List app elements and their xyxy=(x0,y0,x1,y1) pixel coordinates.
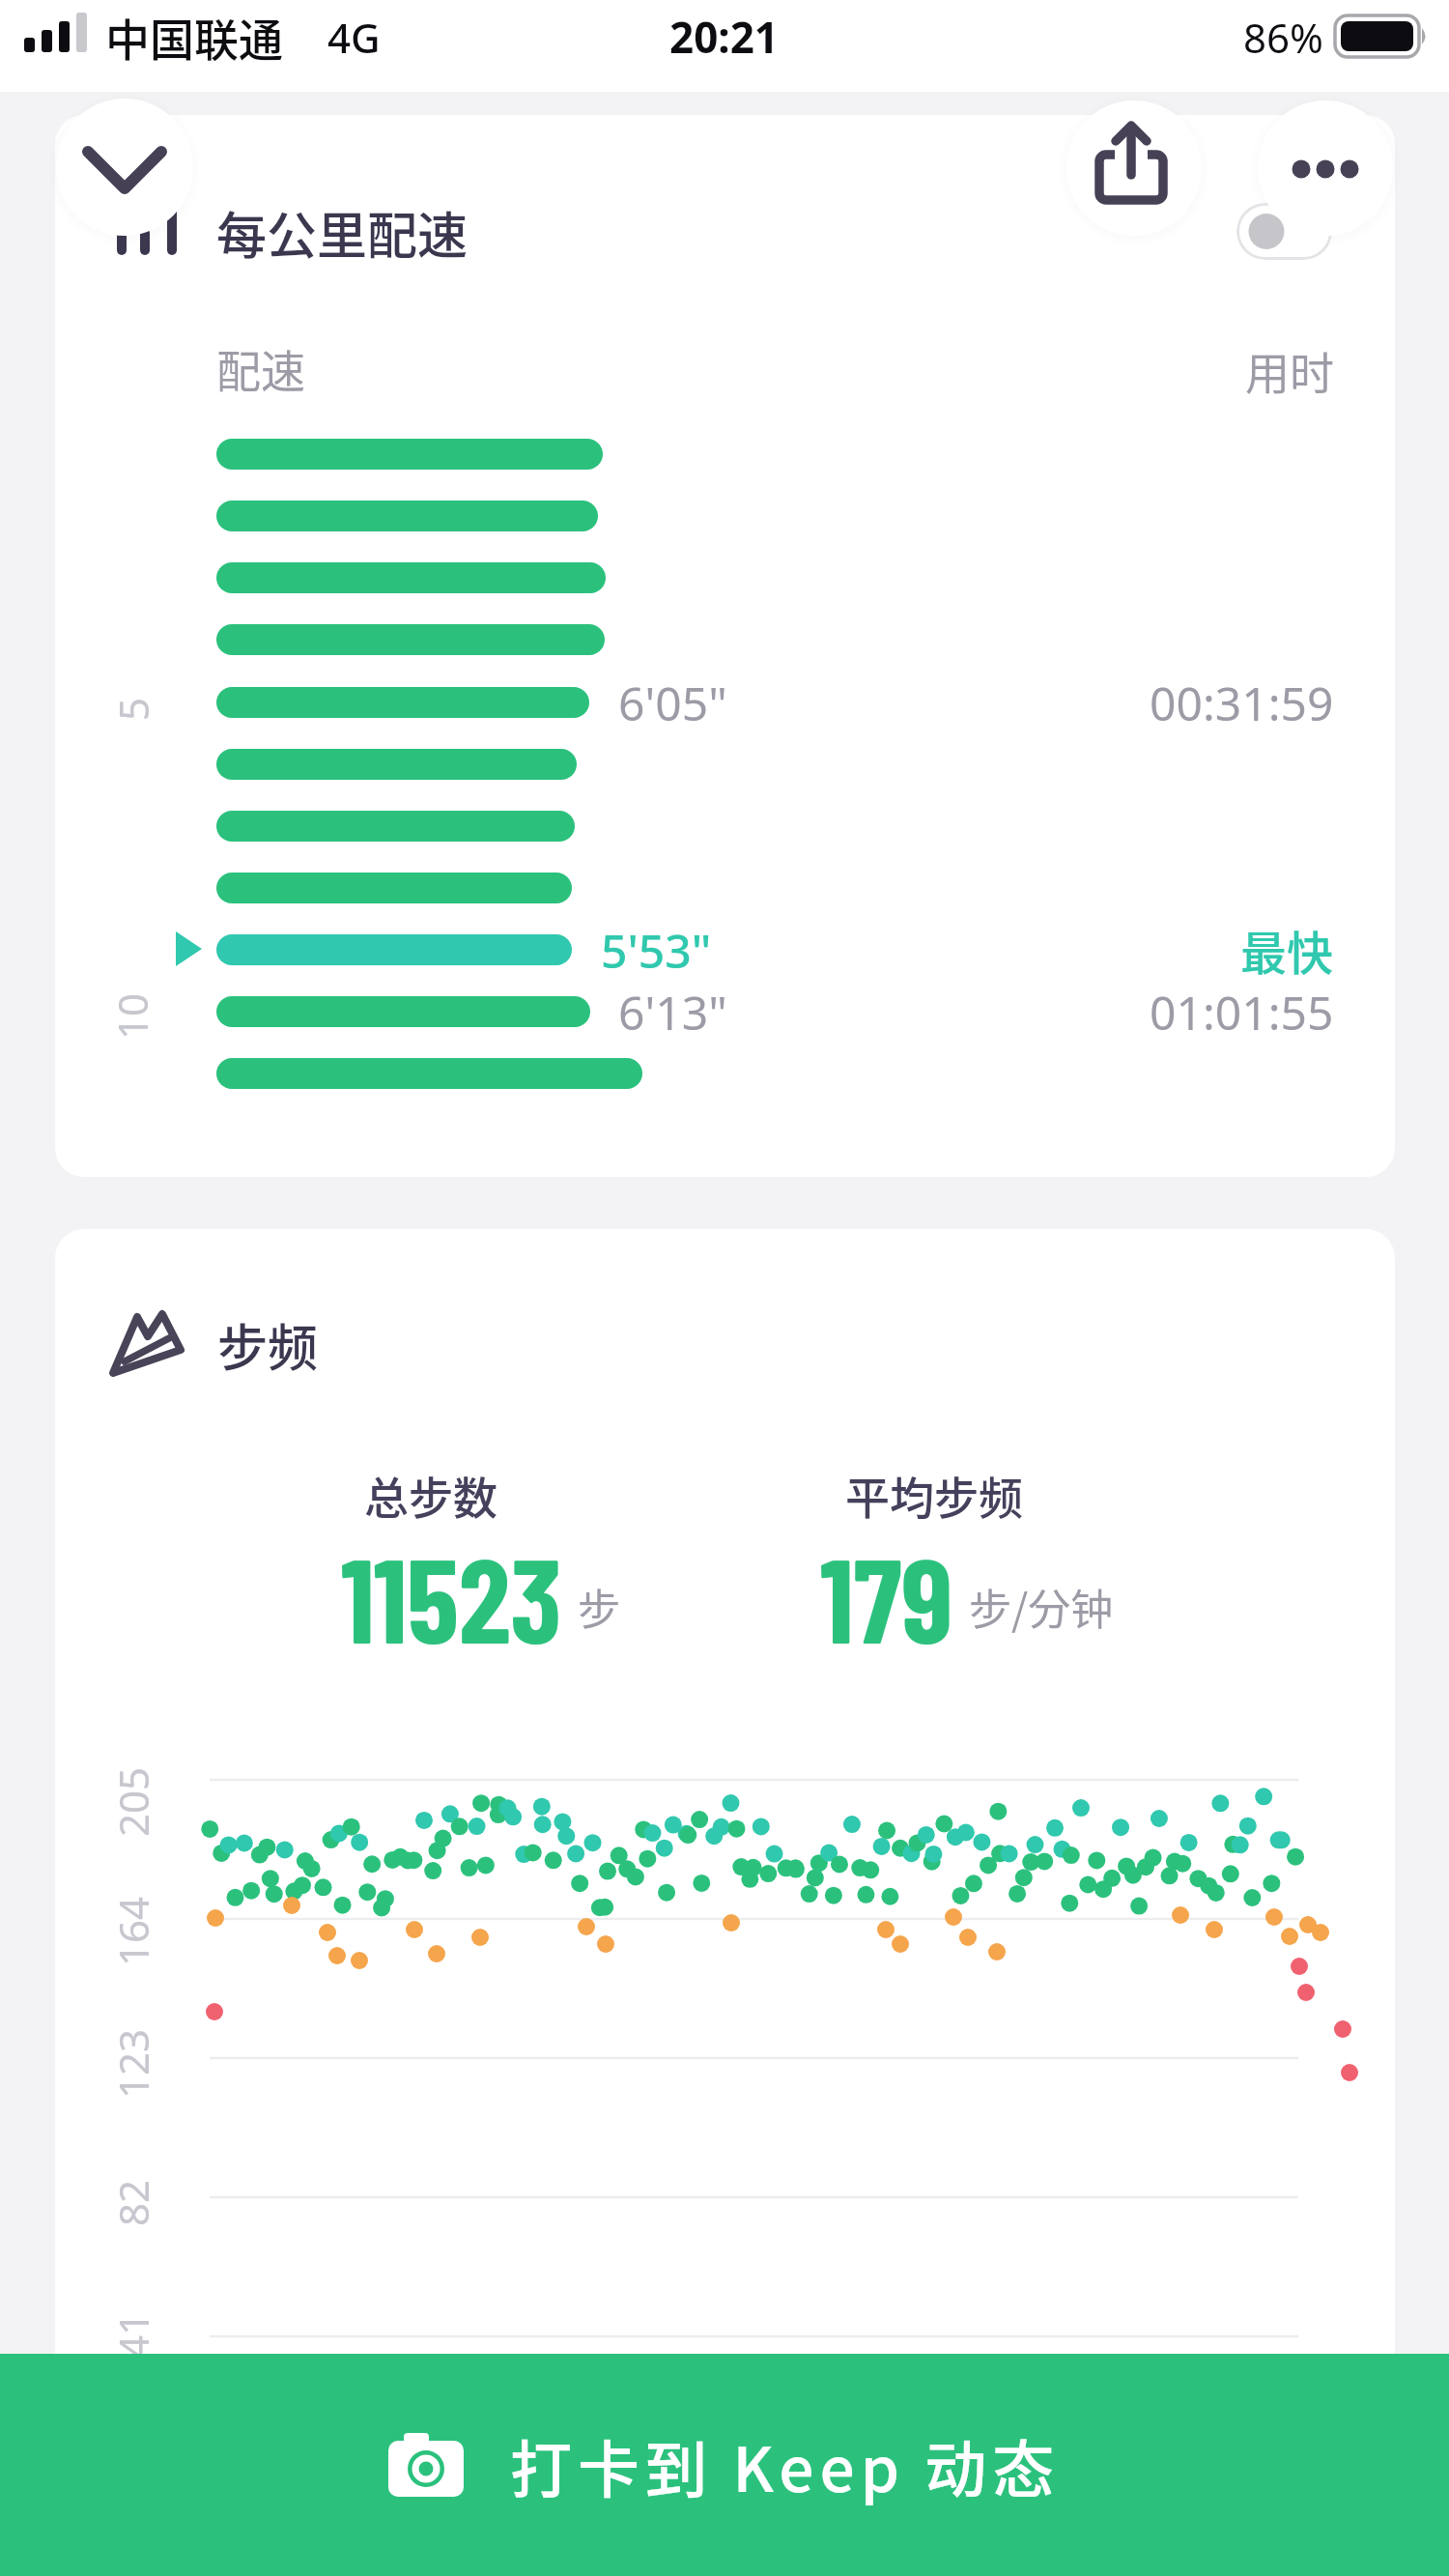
staticText: 打卡到 Keep 动态 xyxy=(510,2420,1061,2510)
staticText: 中国联通 xyxy=(105,5,283,70)
staticText: 配速 xyxy=(216,336,305,401)
staticText: 平均步频 xyxy=(845,1463,1023,1528)
staticText: 最快 xyxy=(1240,916,1334,984)
staticText: 5 xyxy=(105,697,160,721)
staticText: 11523 xyxy=(341,1526,562,1646)
staticText: 4G xyxy=(327,10,381,65)
button[interactable] xyxy=(1066,100,1202,236)
staticText: 用时 xyxy=(1245,338,1334,403)
button[interactable]: 打卡到 Keep 动态 xyxy=(0,2354,1449,2576)
staticText: 123 xyxy=(105,2028,160,2099)
staticText: 总步数 xyxy=(364,1463,497,1528)
button[interactable] xyxy=(56,99,193,236)
staticText: 41 xyxy=(105,2311,160,2359)
staticText: 10 xyxy=(104,992,159,1040)
staticText: 20:21 xyxy=(669,8,780,66)
button[interactable] xyxy=(1258,100,1393,236)
staticText: 步/分钟 xyxy=(969,1576,1114,1638)
staticText: 01:01:55 xyxy=(1150,981,1334,1044)
staticText: 164 xyxy=(105,1896,160,1966)
button[interactable] xyxy=(1236,203,1332,260)
staticText: 82 xyxy=(105,2179,160,2226)
staticText: 6'05" xyxy=(618,672,727,734)
staticText: 步 xyxy=(578,1576,620,1638)
staticText: 6'13" xyxy=(618,981,727,1044)
staticText: 86% xyxy=(1243,10,1323,65)
staticText: 步频 xyxy=(217,1308,319,1381)
staticText: 00:31:59 xyxy=(1150,672,1334,734)
staticText: 205 xyxy=(105,1766,160,1837)
staticText: 5'53" xyxy=(601,919,712,982)
staticText: 每公里配速 xyxy=(216,196,469,269)
staticText: 179 xyxy=(820,1526,953,1646)
